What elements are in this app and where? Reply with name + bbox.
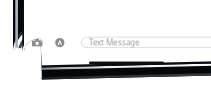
button[interactable]: Camera (28, 37, 46, 49)
button[interactable]: Text Message (81, 37, 211, 48)
staticText: Text Message (89, 37, 140, 48)
button[interactable]: Apps (52, 37, 68, 49)
